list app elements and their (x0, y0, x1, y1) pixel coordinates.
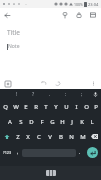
staticText: E (24, 103, 28, 111)
button[interactable]: K (77, 114, 87, 129)
staticText: L (90, 118, 94, 126)
button[interactable]: U (61, 99, 71, 114)
staticText: Note (8, 43, 20, 50)
button[interactable]: T (41, 99, 51, 114)
button[interactable]: V (44, 129, 55, 144)
button[interactable]: C (33, 129, 44, 144)
staticText: K (80, 118, 84, 126)
button[interactable]: ! (8, 89, 25, 99)
button[interactable]: F (37, 114, 47, 129)
button[interactable]: Comma (14, 144, 22, 161)
staticText: M (80, 133, 86, 141)
button[interactable]: Voice input (90, 89, 101, 99)
staticText: 23:04 (88, 2, 99, 7)
button[interactable]: B (55, 129, 66, 144)
staticText: O (84, 103, 89, 111)
button[interactable]: Backspace (88, 129, 101, 144)
staticText: Y (54, 103, 58, 111)
button[interactable]: Shift (0, 129, 13, 144)
button[interactable]: X (23, 129, 33, 144)
button[interactable]: J (67, 114, 77, 129)
button[interactable]: Back (0, 8, 14, 22)
button[interactable]: Redo (52, 78, 63, 89)
button[interactable]: Home (46, 170, 56, 176)
button[interactable]: H (57, 114, 67, 129)
staticText: N (69, 133, 74, 141)
staticText: U (64, 103, 69, 111)
staticText: I (75, 103, 78, 111)
button[interactable]: R (31, 99, 41, 114)
staticText: . (79, 149, 81, 156)
staticText: A (8, 118, 12, 126)
button[interactable]: Period (76, 144, 84, 161)
staticText: Title (7, 28, 20, 37)
button[interactable]: ; (74, 89, 90, 99)
button[interactable]: Z (13, 129, 23, 144)
button[interactable]: Enter (84, 144, 100, 161)
button[interactable]: Add (2, 78, 13, 89)
button[interactable]: Y (51, 99, 61, 114)
button[interactable]: M (77, 129, 88, 144)
staticText: ; (81, 91, 83, 98)
staticText: ! (16, 91, 18, 98)
staticText: 100% (74, 2, 83, 7)
staticText: S (19, 118, 23, 126)
staticText: C (37, 133, 41, 141)
staticText: Q (3, 103, 8, 111)
button[interactable]: Reminder (72, 8, 86, 22)
staticText: Z (16, 133, 20, 141)
button[interactable]: Pin (58, 8, 72, 22)
staticText: V (48, 133, 52, 141)
staticText: B (59, 133, 63, 141)
button[interactable]: More options (88, 78, 99, 89)
button[interactable]: E (21, 99, 31, 114)
staticText: F (40, 118, 44, 126)
button[interactable]: ?123 (1, 144, 14, 161)
staticText: ·· (25, 2, 28, 7)
button[interactable]: L (87, 114, 97, 129)
button[interactable]: Archive (86, 8, 100, 22)
staticText: J (71, 118, 73, 126)
staticText: , (17, 149, 19, 156)
button[interactable]: I (71, 99, 81, 114)
staticText: P (94, 103, 98, 111)
button[interactable]: D (26, 114, 37, 129)
button[interactable]: P (91, 99, 101, 114)
button[interactable]: Q (0, 99, 11, 114)
button[interactable]: G (47, 114, 57, 129)
staticText: W (13, 103, 19, 111)
button[interactable]: N (66, 129, 77, 144)
button[interactable]: Undo (38, 78, 49, 89)
staticText: ? (32, 91, 35, 98)
button[interactable]: . (42, 89, 58, 99)
staticText: R (34, 103, 38, 111)
button[interactable]: O (81, 99, 91, 114)
staticText: : (65, 91, 67, 98)
button[interactable]: : (58, 89, 74, 99)
staticText: T (44, 103, 48, 111)
staticText: . (49, 91, 51, 98)
staticText: ?123 (3, 150, 12, 155)
staticText: X (26, 133, 30, 141)
staticText: H (60, 118, 65, 126)
button[interactable]: ? (25, 89, 42, 99)
button[interactable]: S (15, 114, 26, 129)
button[interactable]: A (4, 114, 15, 129)
staticText: G (50, 118, 55, 126)
staticText: D (29, 118, 34, 126)
button[interactable]: W (11, 99, 21, 114)
